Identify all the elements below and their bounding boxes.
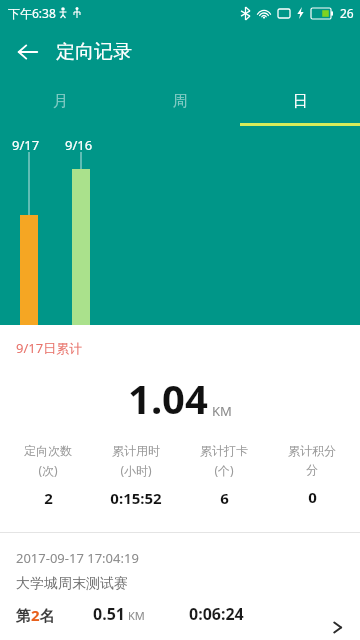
staticText: 大学城周末测试赛: [16, 575, 128, 593]
staticText: 26: [340, 5, 354, 21]
button[interactable]: 累计打卡: [180, 443, 268, 508]
button[interactable]: 日: [240, 79, 360, 126]
staticText: 2: [44, 488, 53, 508]
staticText: 累计打卡: [200, 443, 248, 458]
button[interactable]: 累计积分: [268, 443, 356, 507]
staticText: 累计积分: [288, 443, 336, 458]
staticText: 6: [220, 488, 229, 508]
staticText: 周: [173, 92, 188, 111]
staticText: 第2名: [16, 605, 55, 625]
button[interactable]: 累计用时: [92, 443, 180, 508]
button[interactable]: 2017-09-17 17:04:19: [0, 533, 360, 640]
staticText: 月: [53, 92, 68, 111]
staticText: KM: [128, 608, 145, 623]
staticText: 9/17日累计: [16, 339, 83, 357]
staticText: 2017-09-17 17:04:19: [16, 549, 139, 567]
staticText: (个): [214, 462, 234, 478]
staticText: 9/16: [65, 136, 93, 154]
staticText: 累计用时: [112, 443, 160, 458]
staticText: 分: [306, 462, 318, 477]
staticText: 定向次数: [24, 443, 72, 458]
staticText: 定向记录: [56, 40, 132, 64]
staticText: 1.04: [128, 371, 208, 425]
staticText: 日: [293, 92, 308, 111]
button[interactable]: 周: [120, 79, 240, 126]
staticText: KM: [212, 402, 232, 420]
staticText: 0:15:52: [110, 488, 162, 508]
button[interactable]: 月: [0, 79, 120, 126]
staticText: 0.51: [93, 603, 125, 625]
button[interactable]: 定向次数: [4, 443, 92, 508]
staticText: 下午6:38: [8, 5, 56, 21]
staticText: (次): [38, 462, 58, 478]
staticText: (小时): [120, 462, 152, 478]
staticText: 9/17: [12, 136, 40, 154]
button[interactable]: Back: [6, 30, 50, 74]
staticText: 0: [308, 487, 317, 507]
staticText: 0:06:24: [189, 603, 244, 625]
